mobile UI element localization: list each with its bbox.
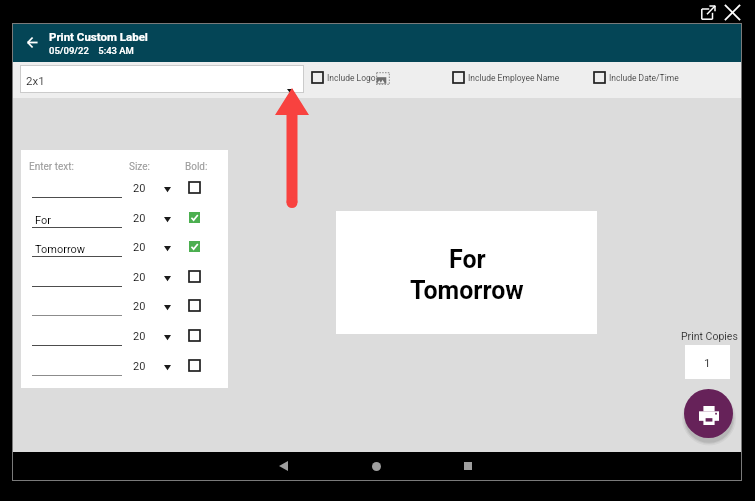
button[interactable]: 1 — [685, 345, 730, 379]
staticText: 20 — [133, 360, 146, 373]
staticText: 20 — [133, 300, 146, 313]
button[interactable]: Home — [364, 454, 388, 478]
button[interactable]: Bold — [189, 300, 200, 311]
button[interactable]: Close — [721, 1, 743, 23]
staticText: Include Logo — [327, 73, 376, 83]
staticText: Include Date/Time — [609, 73, 679, 83]
button[interactable]: Open in new window — [697, 1, 719, 23]
button[interactable]: Back — [20, 30, 44, 54]
button[interactable]: Bold — [189, 212, 200, 223]
button[interactable]: Bold — [189, 182, 200, 193]
button[interactable]: Print — [684, 389, 733, 438]
staticText: 20 — [133, 271, 146, 284]
staticText: 20 — [133, 212, 146, 225]
staticText: 20 — [133, 241, 146, 254]
button[interactable]: Recents — [456, 454, 480, 478]
staticText: For — [35, 214, 51, 227]
staticText: Tomorrow — [410, 276, 524, 305]
button[interactable]: Bold — [189, 330, 200, 341]
button[interactable]: Bold — [189, 360, 200, 371]
staticText: 20 — [133, 182, 146, 195]
staticText: For — [449, 245, 486, 274]
staticText: Enter text: — [29, 161, 74, 173]
button[interactable]: Include Date/Time — [594, 72, 679, 83]
staticText: Include Employee Name — [468, 73, 560, 83]
staticText: 1 — [704, 356, 711, 369]
staticText: Size: — [129, 161, 150, 173]
staticText: Print Custom Label — [49, 30, 148, 43]
staticText: 20 — [133, 330, 146, 343]
button[interactable]: Back — [271, 454, 295, 478]
staticText: Print Copies — [681, 330, 738, 342]
button[interactable]: Bold — [189, 271, 200, 282]
staticText: 2x1 — [26, 74, 45, 87]
button[interactable]: Bold — [189, 241, 200, 252]
staticText: 05/09/22 5:43 AM — [49, 45, 134, 56]
button[interactable]: 2x1 — [20, 65, 304, 93]
button[interactable]: Include Logo — [312, 72, 376, 83]
staticText: Bold: — [185, 161, 208, 173]
button[interactable]: Include Employee Name — [453, 72, 560, 83]
staticText: Tomorrow — [35, 243, 86, 256]
